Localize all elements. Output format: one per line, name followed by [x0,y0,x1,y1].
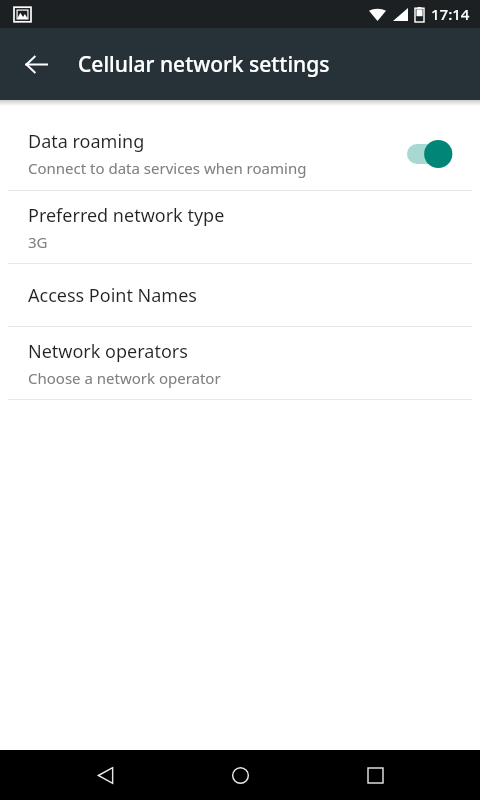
staticText: Connect to data services when roaming [28,158,307,178]
button[interactable]: Recent apps [345,750,405,800]
button[interactable]: Home [210,750,270,800]
button[interactable]: Preferred network type [0,191,480,263]
staticText: Access Point Names [28,283,197,308]
staticText: Choose a network operator [28,368,221,388]
staticText: Preferred network type [28,203,225,228]
button[interactable]: Data roaming [0,117,480,190]
button[interactable]: Back [14,42,58,86]
staticText: Cellular network settings [78,50,330,79]
staticText: 3G [28,232,48,252]
staticText: Network operators [28,339,188,364]
button[interactable]: Access Point Names [0,264,480,326]
button[interactable]: Data roaming toggle [406,136,458,172]
button[interactable]: Back [75,750,135,800]
button[interactable]: Network operators [0,327,480,399]
staticText: Data roaming [28,129,145,154]
staticText: 17:14 [431,4,470,24]
